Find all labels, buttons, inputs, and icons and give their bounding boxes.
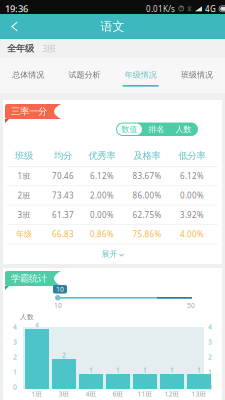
- button[interactable]: 排名: [143, 122, 170, 136]
- staticText: 70.46: [52, 171, 74, 181]
- staticText: 73.43: [52, 190, 74, 201]
- staticText: 总体情况: [12, 70, 44, 80]
- staticText: 人数: [175, 124, 191, 134]
- staticText: 1班: [31, 390, 42, 398]
- staticText: 试题分析: [68, 70, 100, 80]
- staticText: 62.75%: [132, 209, 161, 220]
- staticText: 2班: [17, 190, 30, 201]
- staticText: 19:36: [5, 2, 28, 15]
- button[interactable]: 展开: [3, 244, 222, 264]
- staticText: 均分: [54, 150, 72, 161]
- staticText: 12班: [164, 390, 179, 398]
- staticText: 11班: [137, 390, 152, 398]
- staticText: ⏱: [178, 5, 184, 13]
- button[interactable]: 返回: [0, 14, 27, 39]
- staticText: 优秀率: [88, 150, 115, 161]
- staticText: 3.92%: [180, 209, 204, 220]
- staticText: 66.83: [52, 229, 74, 239]
- staticText: 0: [208, 383, 212, 391]
- staticText: 三率一分: [11, 106, 47, 117]
- staticText: 10: [56, 285, 64, 294]
- staticText: 4.00%: [180, 229, 204, 239]
- staticText: 1: [208, 368, 212, 376]
- staticText: 75.86%: [132, 229, 161, 239]
- button[interactable]: 试题分析: [56, 58, 112, 93]
- staticText: 及格率: [133, 150, 160, 161]
- staticText: 4: [35, 321, 39, 329]
- button[interactable]: 全年级: [7, 39, 34, 58]
- staticText: 学霸统计: [11, 273, 47, 284]
- staticText: 1: [116, 366, 120, 374]
- staticText: 3: [13, 338, 17, 346]
- staticText: 1班: [17, 171, 30, 181]
- staticText: 0.00%: [180, 190, 204, 201]
- staticText: 6班: [112, 390, 123, 398]
- staticText: 3班: [58, 390, 69, 398]
- staticText: 全年级: [7, 43, 34, 54]
- staticText: 2: [13, 353, 17, 361]
- staticText: 数值: [121, 124, 137, 134]
- staticText: 0.01K/s: [146, 3, 175, 14]
- staticText: 班级: [15, 150, 33, 161]
- staticText: 2: [62, 351, 66, 359]
- button[interactable]: 数值: [117, 123, 142, 135]
- staticText: 2.00%: [90, 190, 114, 201]
- staticText: 3班: [42, 42, 56, 55]
- staticText: 0: [13, 383, 17, 391]
- staticText: 排名: [148, 124, 164, 134]
- staticText: 班级情况: [181, 70, 213, 80]
- staticText: 2: [208, 353, 212, 361]
- staticText: 年级情况: [125, 70, 157, 80]
- staticText: 语文: [100, 19, 124, 34]
- staticText: 86.00%: [132, 190, 161, 201]
- staticText: 6.12%: [180, 171, 204, 181]
- staticText: 0.00%: [90, 209, 114, 220]
- staticText: 人数: [20, 313, 34, 321]
- staticText: 83.67%: [132, 171, 161, 181]
- staticText: 1: [170, 366, 174, 374]
- staticText: 13班: [191, 390, 206, 398]
- staticText: 50: [187, 301, 195, 310]
- staticText: 3班: [17, 209, 30, 220]
- staticText: ⧖: [187, 6, 192, 12]
- button[interactable]: 总体情况: [0, 58, 56, 93]
- staticText: 1: [89, 366, 93, 374]
- staticText: 展开: [101, 249, 117, 259]
- staticText: 3: [208, 338, 212, 346]
- staticText: 4班: [85, 390, 96, 398]
- button[interactable]: 年级情况: [112, 58, 169, 93]
- staticText: 4: [208, 323, 212, 331]
- button[interactable]: 3班: [42, 39, 56, 58]
- staticText: 1: [13, 368, 17, 376]
- staticText: 年级: [16, 229, 32, 239]
- staticText: 6.12%: [90, 171, 114, 181]
- staticText: 4G: [205, 3, 216, 14]
- staticText: 低分率: [178, 150, 205, 161]
- staticText: 0.86%: [90, 229, 114, 239]
- button[interactable]: 人数: [170, 122, 197, 136]
- staticText: 4: [13, 323, 17, 331]
- staticText: 1: [197, 366, 201, 374]
- staticText: 1: [143, 366, 147, 374]
- staticText: 61.37: [52, 209, 74, 220]
- button[interactable]: 班级情况: [169, 58, 225, 93]
- staticText: 10: [54, 301, 62, 310]
